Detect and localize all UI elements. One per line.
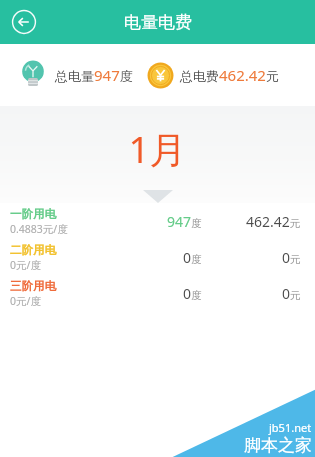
staticText: 0.4883元/度 [10, 222, 68, 236]
staticText: 总电费462.42元 [180, 65, 279, 85]
staticText: 0度 [183, 248, 202, 267]
staticText: 总电量947度 [55, 65, 133, 85]
staticText: 0元/度 [10, 294, 41, 308]
staticText: jb51.net [269, 420, 312, 435]
staticText: 二阶用电 [10, 243, 56, 257]
staticText: 一阶用电 [10, 207, 56, 221]
button[interactable]: Back [9, 7, 39, 37]
button[interactable]: 二阶用电 [0, 239, 315, 275]
staticText: 1月 [128, 123, 187, 174]
staticText: 462.42元 [246, 212, 301, 231]
staticText: 脚本之家 [244, 435, 312, 456]
staticText: 947度 [167, 212, 202, 231]
button[interactable]: 1月 [0, 106, 315, 203]
staticText: 电量电费 [124, 12, 192, 33]
staticText: 三阶用电 [10, 279, 56, 293]
staticText: 0度 [183, 284, 202, 303]
button[interactable]: 三阶用电 [0, 275, 315, 311]
staticText: 0元 [282, 284, 301, 303]
staticText: 0元/度 [10, 258, 41, 272]
staticText: 0元 [282, 248, 301, 267]
button[interactable]: 一阶用电 [0, 203, 315, 239]
